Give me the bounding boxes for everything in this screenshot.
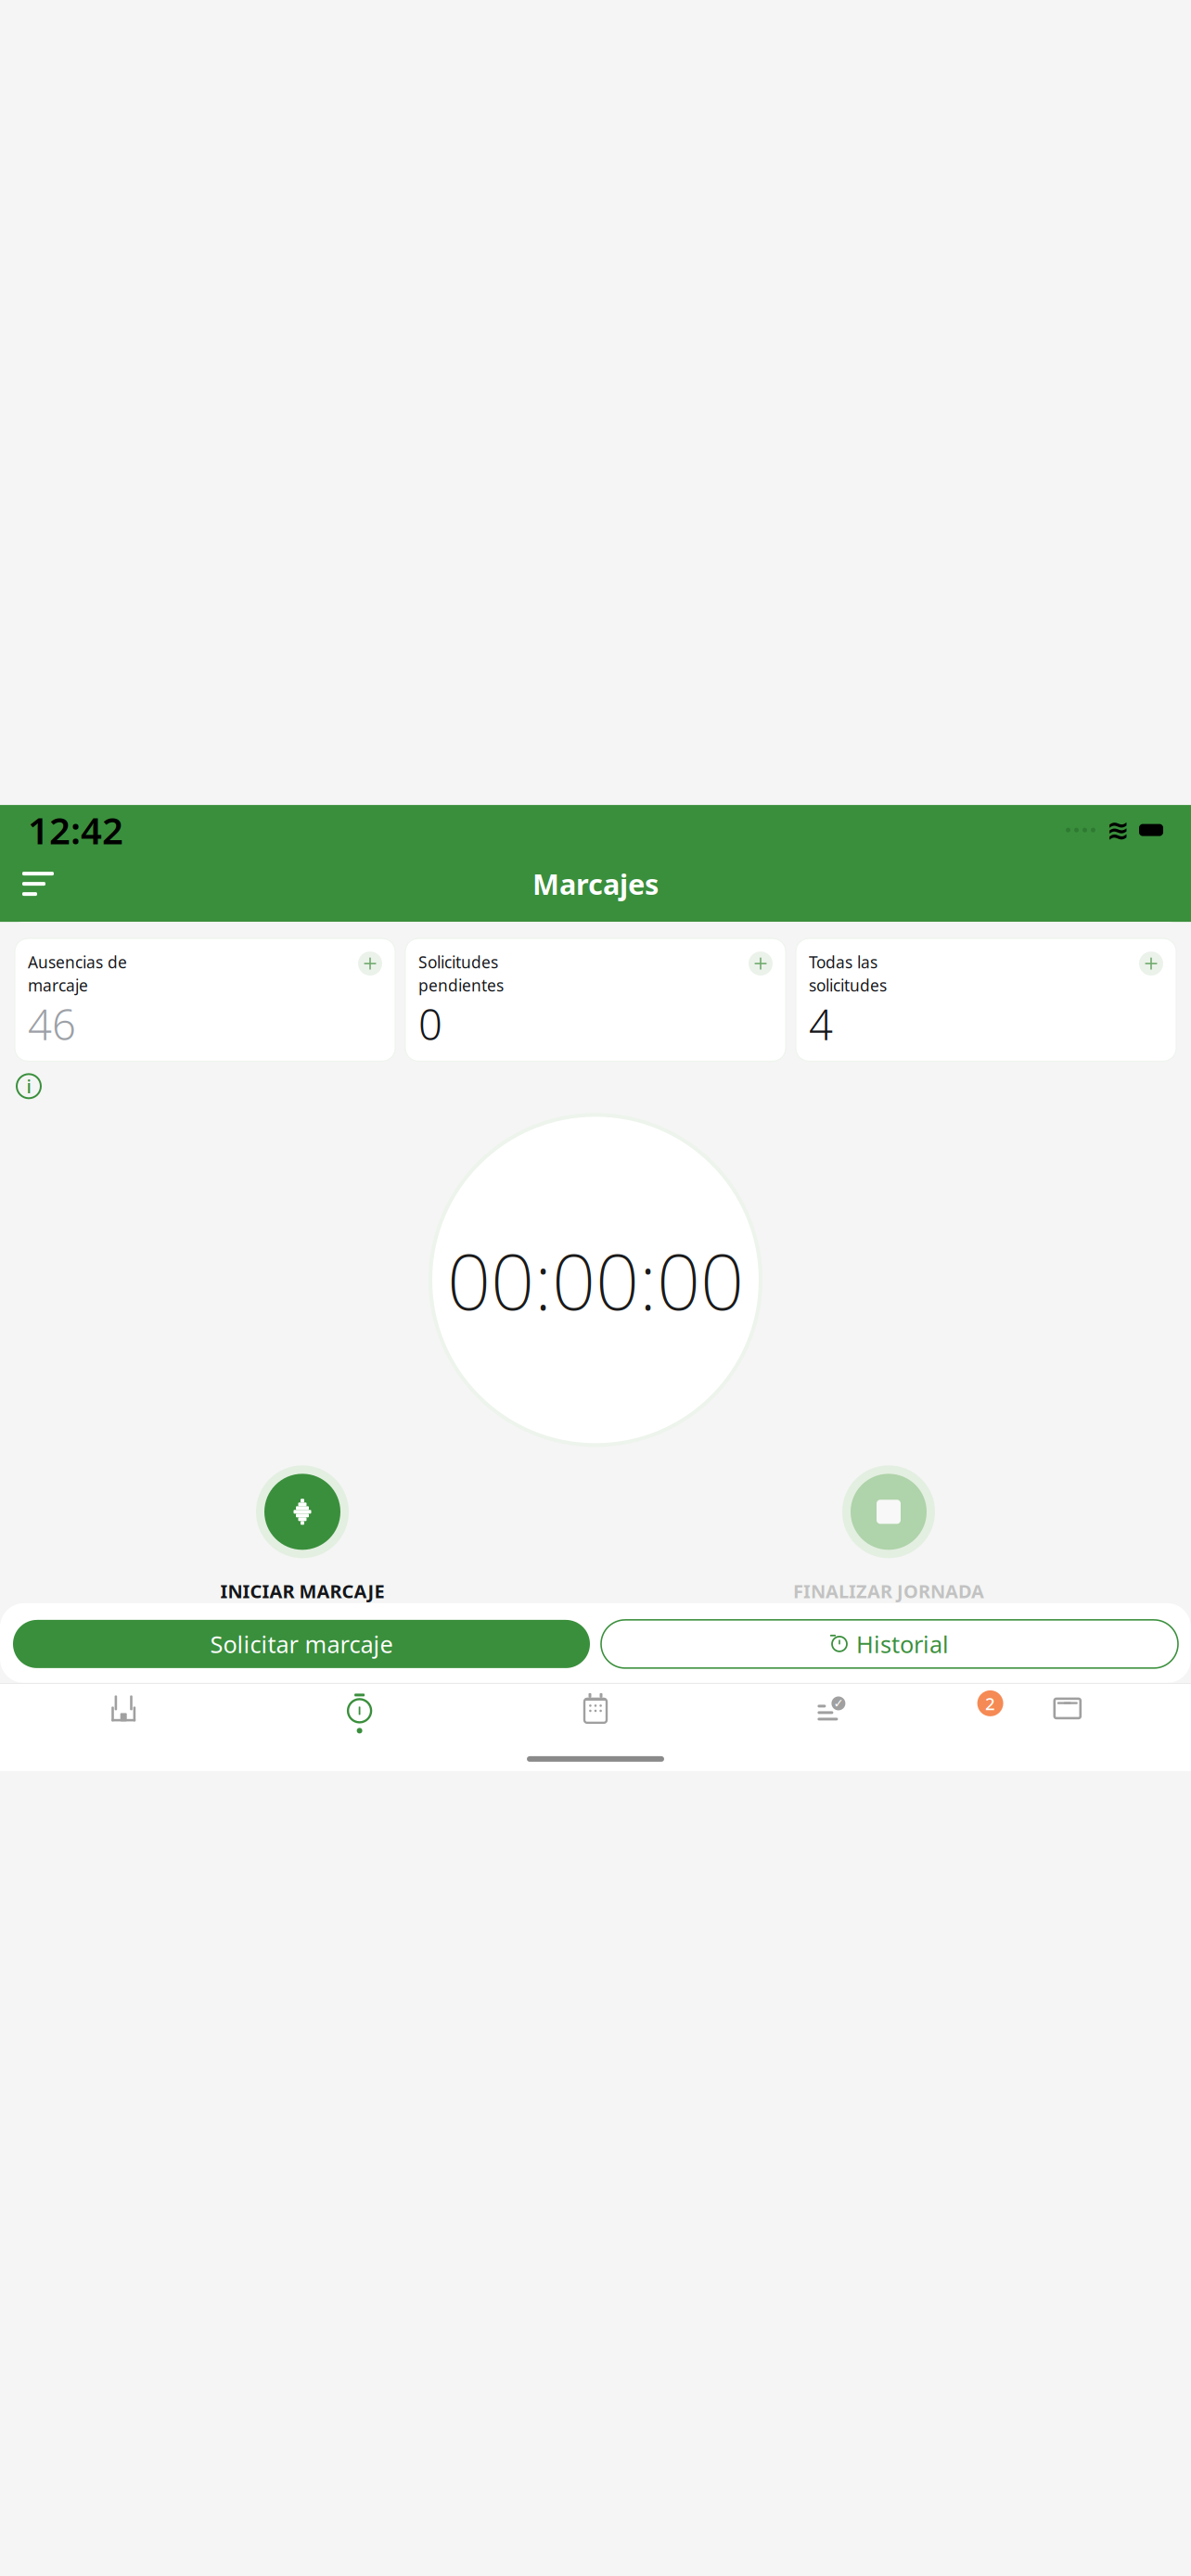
button[interactable]: Información <box>15 1072 43 1100</box>
button[interactable]: INICIAR MARCAJE <box>9 1465 595 1603</box>
staticText: 00:00:00 <box>447 1229 744 1331</box>
staticText: 2 <box>985 1692 995 1715</box>
button[interactable]: Inicio <box>6 1689 242 1738</box>
staticText: 12:42 <box>28 805 123 855</box>
button[interactable]: Todas las <box>796 939 1176 1061</box>
staticText: INICIAR MARCAJE <box>220 1579 384 1603</box>
staticText: i <box>26 1074 31 1099</box>
button[interactable]: Historial <box>601 1620 1178 1668</box>
button[interactable]: Tareas <box>713 1689 949 1738</box>
button[interactable]: Solicitar marcaje <box>13 1620 590 1668</box>
button[interactable]: Calendario <box>478 1689 713 1738</box>
staticText: Todas las <box>809 951 877 973</box>
staticText: Historial <box>856 1628 949 1660</box>
button[interactable]: Mensajes <box>949 1689 1185 1738</box>
staticText: ≋ <box>1107 815 1130 845</box>
staticText: 4 <box>809 996 833 1052</box>
staticText: marcaje <box>28 975 88 996</box>
staticText: ✓ <box>833 1696 844 1710</box>
staticText: Solicitar marcaje <box>210 1628 393 1660</box>
staticText: Solicitudes <box>418 951 498 973</box>
staticText: solicitudes <box>809 975 887 996</box>
button[interactable]: Marcajes <box>242 1689 478 1738</box>
button[interactable]: Menú <box>17 864 59 904</box>
button[interactable]: Solicitudes <box>405 939 786 1061</box>
staticText: FINALIZAR JORNADA <box>793 1579 984 1603</box>
staticText: 0 <box>418 996 442 1052</box>
staticText: Ausencias de <box>28 951 127 973</box>
button[interactable]: FINALIZAR JORNADA <box>595 1465 1182 1603</box>
staticText: 46 <box>28 996 76 1052</box>
staticText: pendientes <box>418 975 504 996</box>
staticText: Marcajes <box>532 865 659 903</box>
button[interactable]: Ausencias de <box>15 939 395 1061</box>
